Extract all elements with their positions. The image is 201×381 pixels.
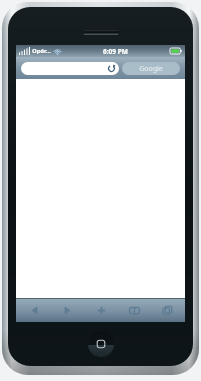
- button[interactable]: Pages: [155, 299, 179, 321]
- button[interactable]: Bookmarks: [122, 299, 146, 321]
- button[interactable]: Home: [88, 331, 114, 357]
- button[interactable]: Google: [122, 62, 180, 75]
- staticText: 6:09 PM: [103, 47, 128, 56]
- button[interactable]: Forward: [55, 299, 79, 321]
- staticText: Opér...: [32, 47, 51, 55]
- button[interactable]: Back: [22, 299, 46, 321]
- button[interactable]: Reload: [107, 64, 116, 73]
- staticText: Google: [139, 64, 163, 74]
- button[interactable]: Share: [89, 299, 113, 321]
- button[interactable]: Reload: [21, 62, 119, 75]
